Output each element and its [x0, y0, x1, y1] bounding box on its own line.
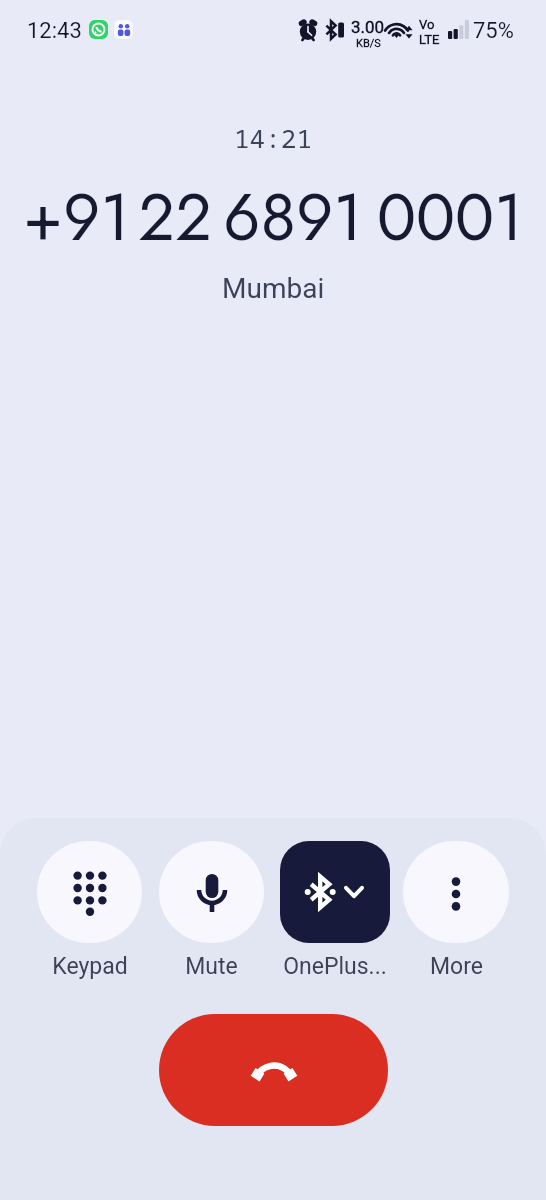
button[interactable]: Keypad	[37, 841, 142, 943]
button[interactable]: Mute	[159, 841, 264, 943]
staticText: LTE	[419, 32, 440, 47]
staticText: 6891	[223, 170, 363, 264]
staticText: KB/S	[356, 37, 381, 50]
staticText: 14:21	[234, 120, 313, 155]
staticText: 0001	[377, 170, 524, 264]
staticText: 22	[138, 170, 212, 264]
button[interactable]: OnePlus...	[280, 841, 390, 943]
staticText: Mute	[185, 953, 238, 980]
button[interactable]: More	[403, 841, 509, 943]
staticText: 75%	[473, 18, 514, 44]
staticText: Keypad	[52, 953, 128, 980]
staticText: Mumbai	[222, 272, 325, 305]
staticText: OnePlus...	[283, 953, 387, 980]
staticText: Vo	[419, 17, 435, 32]
staticText: +91	[23, 170, 130, 264]
staticText: 3.00	[351, 17, 385, 37]
staticText: More	[430, 953, 483, 980]
staticText: 12:43	[27, 18, 82, 44]
button[interactable]: End call	[159, 1014, 388, 1126]
